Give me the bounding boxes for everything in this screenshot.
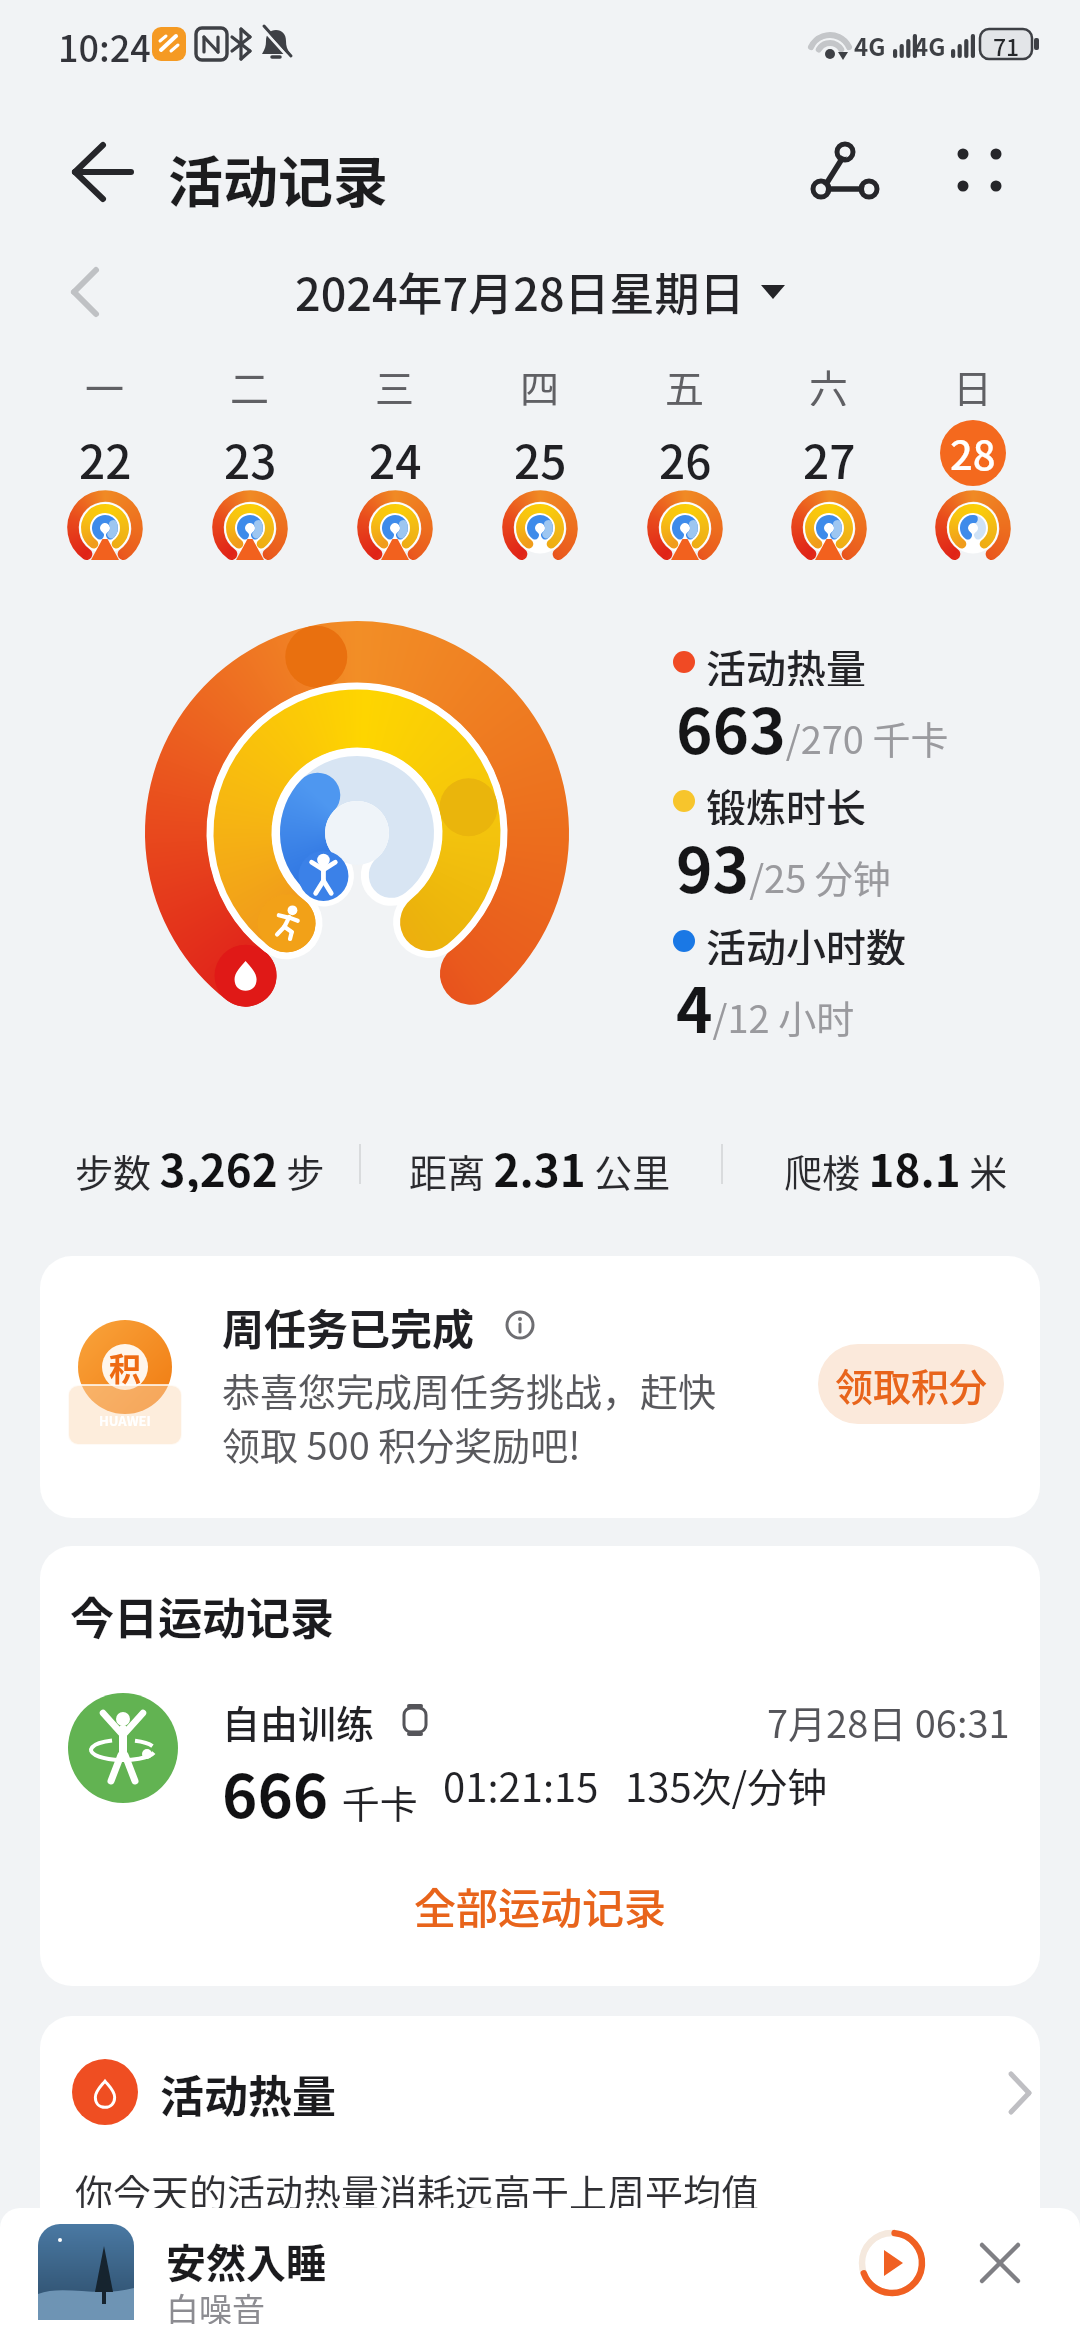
button[interactable] [935, 132, 1025, 212]
staticText: 五 [665, 358, 705, 406]
staticText: 活动热量 [160, 2062, 336, 2122]
staticText: 24 [369, 426, 422, 480]
button[interactable] [55, 132, 145, 212]
staticText: 恭喜您完成周任务挑战，赶快 [222, 1362, 717, 1414]
staticText: 活动记录 [168, 138, 389, 208]
staticText: 全部运动记录 [414, 1875, 667, 1936]
button[interactable]: 26 [640, 426, 730, 480]
staticText: 26 [659, 426, 712, 480]
staticText: 你今天的活动热量消耗远高于上周平均值 [75, 2163, 760, 2218]
staticText: 10:24 [58, 20, 151, 66]
staticText: 23 [224, 426, 277, 480]
staticText: 安然入睡 [166, 2232, 326, 2284]
staticText: 活动热量 [706, 638, 866, 686]
staticText: 666 千卡 [222, 1748, 418, 1826]
staticText: 663/270 千卡 [676, 682, 949, 762]
button[interactable] [805, 132, 885, 212]
staticText: 三 [375, 358, 415, 406]
staticText: 今日运动记录 [70, 1584, 334, 1644]
staticText: 135次/分钟 [625, 1756, 828, 1814]
button[interactable]: 24 [350, 426, 440, 480]
staticText: 周任务已完成 [222, 1296, 475, 1352]
button[interactable]: 距离 2.31 公里 [380, 1136, 700, 1192]
button[interactable]: 自由训练 [222, 1694, 422, 1744]
staticText: 领取 500 积分奖励吧! [222, 1416, 581, 1468]
button[interactable] [974, 2237, 1026, 2289]
button[interactable] [40, 2016, 1040, 2331]
staticText: 2024年7月28日星期日 [295, 259, 745, 324]
staticText: HUAWEI [99, 1411, 151, 1430]
button[interactable]: 爬楼 18.1 米 [720, 1136, 1008, 1192]
staticText: 4G [854, 28, 886, 60]
staticText: 一 [85, 358, 125, 406]
button[interactable]: 28 [940, 420, 1006, 486]
staticText: 7月28日 06:31 [767, 1694, 1010, 1744]
staticText: 01:21:15 [443, 1756, 599, 1814]
staticText: 4/12 小时 [676, 961, 855, 1041]
button[interactable]: 2024年7月28日星期日 [0, 258, 1080, 324]
staticText: 日 [953, 358, 993, 406]
staticText: 四 [520, 358, 560, 406]
staticText: 活动小时数 [706, 917, 906, 965]
button[interactable] [855, 2226, 929, 2300]
staticText: 步数 3,262 步 [75, 1136, 325, 1192]
button[interactable]: 22 [60, 426, 150, 480]
staticText: 锻炼时长 [706, 777, 866, 825]
staticText: 4G [914, 28, 946, 60]
staticText: 自由训练 [222, 1694, 375, 1744]
staticText: 93/25 分钟 [676, 821, 891, 901]
staticText: 距离 2.31 公里 [409, 1136, 671, 1192]
staticText: 二 [230, 358, 270, 406]
button[interactable]: 25 [495, 426, 585, 480]
button[interactable]: 23 [205, 426, 295, 480]
button[interactable]: 步数 3,262 步 [75, 1136, 375, 1192]
staticText: 22 [79, 426, 132, 480]
staticText: 27 [803, 426, 856, 480]
staticText: 71 [993, 29, 1020, 59]
button[interactable]: 领取积分 [818, 1344, 1004, 1424]
staticText: 六 [809, 358, 849, 406]
staticText: 白噪音 [166, 2284, 265, 2324]
staticText: 积 [109, 1344, 142, 1388]
staticText: 25 [514, 426, 567, 480]
button[interactable]: 27 [784, 426, 874, 480]
button[interactable]: 全部运动记录 [340, 1874, 740, 1936]
staticText: 28 [950, 424, 996, 482]
button[interactable] [40, 1256, 1040, 1518]
button[interactable] [0, 2208, 1080, 2331]
staticText: 领取积分 [835, 1357, 988, 1412]
staticText: 爬楼 18.1 米 [784, 1136, 1008, 1192]
